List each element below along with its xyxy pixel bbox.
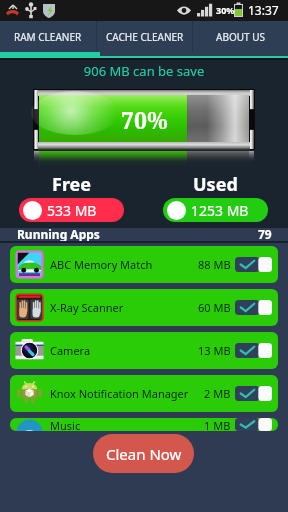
button[interactable]: Camera	[10, 332, 278, 369]
staticText: 1 MB	[204, 418, 231, 431]
staticText: 30%	[216, 4, 235, 16]
staticText: 60 MB	[198, 300, 231, 315]
staticText: 1253 MB	[191, 201, 249, 220]
staticText: CACHE CLEANER	[106, 30, 184, 44]
button[interactable]: RAM CLEANER	[0, 21, 96, 52]
staticText: 533 MB	[47, 201, 97, 220]
button[interactable]: Toggle app	[235, 386, 272, 401]
staticText: Running Apps	[17, 226, 100, 241]
staticText: RAM CLEANER	[14, 30, 82, 44]
staticText: Clean Now	[106, 444, 182, 464]
button[interactable]: Toggle app	[235, 418, 272, 431]
staticText: ABOUT US	[216, 30, 265, 44]
button[interactable]: X-Ray Scanner	[10, 289, 278, 326]
staticText: Camera	[50, 343, 91, 358]
button[interactable]: ABC Memory Match	[10, 246, 278, 283]
staticText: 2 MB	[204, 386, 231, 401]
button[interactable]: ABOUT US	[193, 21, 288, 52]
button[interactable]: 1253 MB	[163, 198, 268, 222]
button[interactable]: Music	[10, 418, 278, 431]
staticText: 13 MB	[198, 343, 231, 358]
staticText: Music	[50, 418, 81, 431]
button[interactable]: Toggle app	[235, 343, 272, 358]
staticText: 70%	[121, 104, 168, 135]
staticText: 88 MB	[198, 257, 231, 272]
staticText: Free	[52, 172, 92, 197]
staticText: Used	[193, 172, 238, 197]
staticText: X-Ray Scanner	[50, 300, 124, 315]
staticText: ABC Memory Match	[50, 257, 153, 272]
button[interactable]: CACHE CLEANER	[97, 21, 192, 52]
button[interactable]: Toggle app	[235, 257, 272, 272]
staticText: 906 MB can be save	[0, 62, 288, 80]
button[interactable]: Clean Now	[93, 434, 194, 473]
staticText: Knox Notification Manager	[50, 386, 189, 401]
button[interactable]: 533 MB	[19, 198, 124, 222]
staticText: 79	[258, 226, 272, 241]
button[interactable]: Toggle app	[235, 300, 272, 315]
button[interactable]: Knox Notification Manager	[10, 375, 278, 412]
staticText: 13:37	[248, 2, 279, 18]
